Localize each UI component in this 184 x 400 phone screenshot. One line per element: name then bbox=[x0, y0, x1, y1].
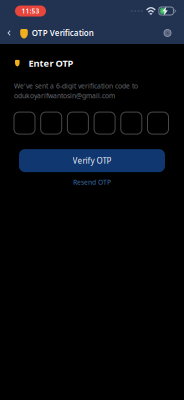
staticText: odukoyarifwantosin@gmail.com bbox=[14, 91, 115, 100]
staticText: We've sent a 6-digit verification code t… bbox=[14, 81, 138, 90]
button[interactable]: Resend OTP bbox=[19, 175, 165, 189]
staticText: Verify OTP bbox=[72, 155, 111, 166]
staticText: Resend OTP bbox=[73, 178, 111, 187]
button[interactable]: Verify OTP bbox=[19, 149, 165, 172]
staticText: OTP Verification bbox=[32, 28, 94, 38]
staticText: 11:53 bbox=[21, 7, 39, 15]
button[interactable]: Back bbox=[0, 22, 20, 44]
button[interactable]: Help bbox=[158, 22, 177, 43]
staticText: Enter OTP bbox=[29, 57, 74, 69]
